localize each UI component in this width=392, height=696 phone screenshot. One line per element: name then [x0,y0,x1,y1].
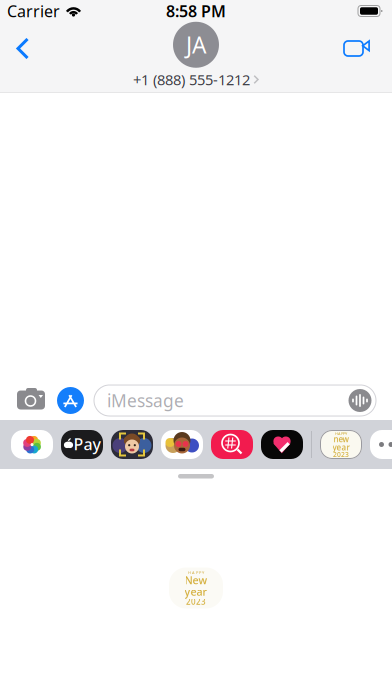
button[interactable]: Apple Pay [61,430,103,459]
staticText: new [333,434,348,444]
button[interactable]: FaceTime [328,26,386,70]
staticText: iMessage [107,389,184,412]
staticText: H A P P Y [188,570,204,575]
button[interactable]: Digital Touch [261,430,303,459]
staticText: +1 (888) 555-1212 [133,70,250,89]
button[interactable]: Memoji [111,430,153,459]
staticText: JA [186,30,206,60]
button[interactable]: Audio message [347,388,372,413]
button[interactable]: Camera [15,380,47,420]
staticText: 8:58 PM [166,0,226,22]
staticText: Pay [73,433,100,455]
button[interactable]: Photos [11,430,53,459]
staticText: 2023 [186,596,206,607]
staticText: Carrier [7,0,60,22]
staticText: year [184,585,207,599]
staticText: HAPPY [335,431,347,436]
staticText: year [332,442,349,453]
button[interactable]: Images [211,430,253,459]
button[interactable]: New Year 2023 [320,430,362,459]
button[interactable]: Memoji Stickers [161,430,203,459]
staticText: New [184,573,207,587]
button[interactable]: More apps [370,430,392,459]
button[interactable]: Back [6,26,39,70]
staticText: 2023 [333,450,349,459]
button[interactable]: Apps [56,380,85,420]
